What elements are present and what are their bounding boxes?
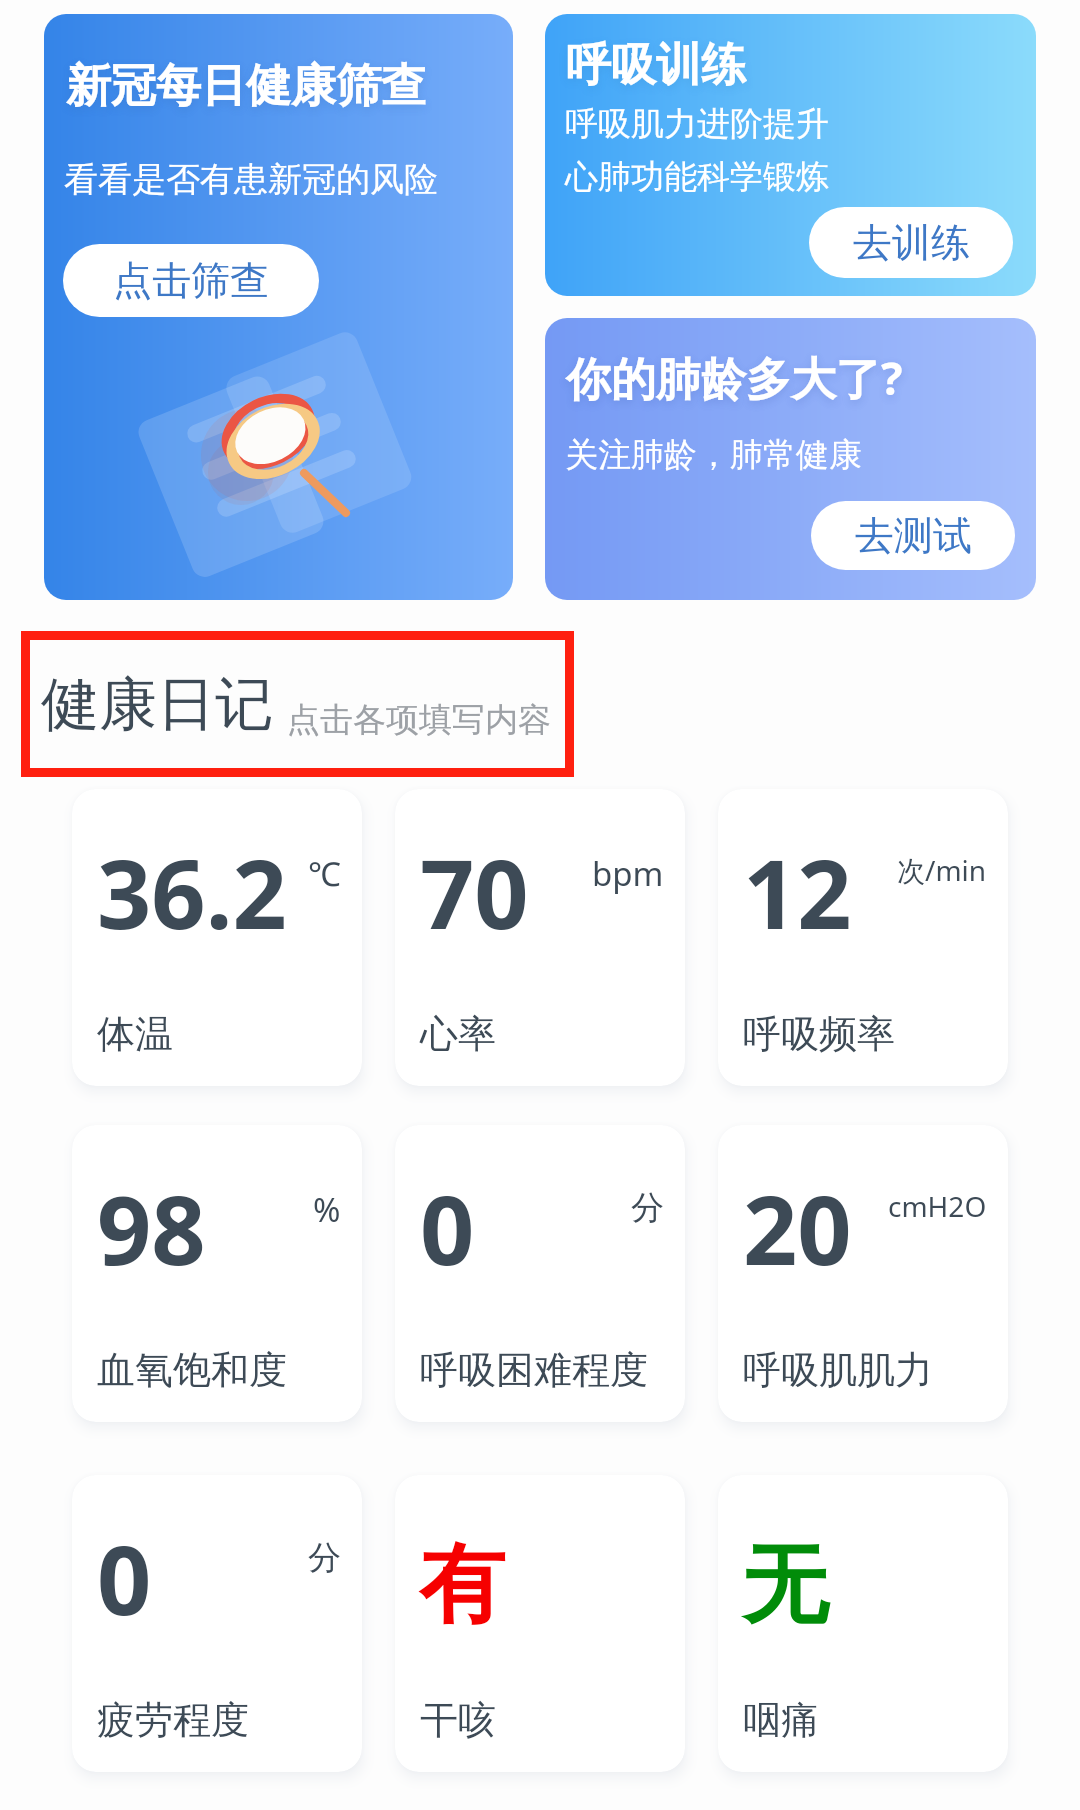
button[interactable]: 36.2	[72, 789, 362, 1086]
staticText: 呼吸训练	[566, 37, 746, 94]
staticText: 关注肺龄，肺常健康	[565, 434, 862, 476]
staticText: 去训练	[853, 218, 970, 267]
staticText: 你的肺龄多大了?	[566, 347, 903, 408]
button[interactable]: 12	[718, 789, 1008, 1086]
staticText: 36.2	[97, 827, 287, 956]
staticText: 无	[742, 1531, 828, 1639]
staticText: 点击各项填写内容	[287, 699, 551, 741]
button[interactable]: 新冠每日健康筛查	[44, 14, 513, 600]
staticText: ℃	[308, 851, 341, 896]
button[interactable]: 无	[718, 1475, 1008, 1772]
button[interactable]: 有	[395, 1475, 685, 1772]
staticText: 疲劳程度	[97, 1696, 249, 1744]
staticText: 干咳	[420, 1696, 496, 1744]
staticText: 分	[308, 1537, 341, 1579]
staticText: %	[313, 1187, 341, 1232]
staticText: 0	[420, 1163, 475, 1292]
staticText: 咽痛	[743, 1696, 819, 1744]
button[interactable]: 去训练	[809, 207, 1013, 278]
button[interactable]: 点击筛查	[63, 244, 319, 317]
button[interactable]: 0	[395, 1125, 685, 1422]
button[interactable]: 70	[395, 789, 685, 1086]
button[interactable]: 呼吸训练	[545, 14, 1036, 296]
staticText: 体温	[97, 1010, 173, 1058]
staticText: 98	[97, 1163, 206, 1292]
staticText: 去测试	[855, 511, 972, 560]
staticText: bpm	[592, 851, 664, 896]
staticText: 12	[743, 827, 852, 956]
staticText: 有	[419, 1531, 505, 1639]
staticText: 次/min	[897, 851, 987, 889]
staticText: 分	[631, 1187, 664, 1229]
staticText: 呼吸肌力进阶提升	[565, 103, 829, 145]
button[interactable]: 去测试	[811, 501, 1015, 570]
staticText: 血氧饱和度	[97, 1346, 287, 1394]
staticText: cmH2O	[888, 1187, 987, 1225]
staticText: 健康日记	[41, 668, 273, 741]
staticText: 70	[420, 827, 529, 956]
button[interactable]: 20	[718, 1125, 1008, 1422]
staticText: 20	[743, 1163, 852, 1292]
staticText: 呼吸肌肌力	[743, 1346, 933, 1394]
staticText: 呼吸频率	[743, 1010, 895, 1058]
staticText: 0	[97, 1513, 152, 1642]
button[interactable]: 0	[72, 1475, 362, 1772]
staticText: 心肺功能科学锻炼	[565, 156, 829, 198]
button[interactable]: 你的肺龄多大了?	[545, 318, 1036, 600]
staticText: 看看是否有患新冠的风险	[64, 158, 438, 201]
staticText: 呼吸困难程度	[420, 1346, 648, 1394]
staticText: 新冠每日健康筛查	[66, 58, 426, 115]
staticText: 点击筛查	[113, 256, 269, 305]
button[interactable]: 98	[72, 1125, 362, 1422]
staticText: 心率	[420, 1010, 496, 1058]
